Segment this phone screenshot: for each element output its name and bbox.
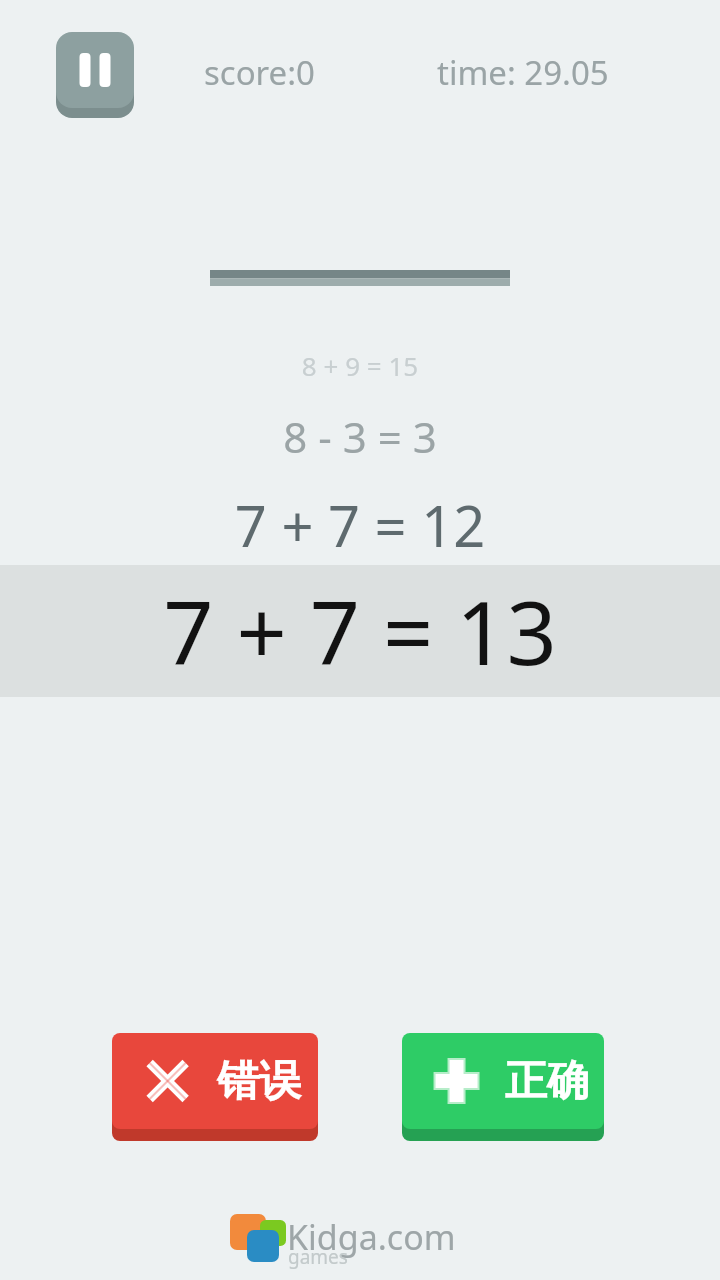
staticText: 错误 — [217, 1055, 301, 1108]
button[interactable]: 正确 — [402, 1033, 604, 1141]
button[interactable]: 7 + 7 = 13 — [0, 565, 720, 697]
button[interactable]: Pause — [56, 32, 134, 118]
staticText: 7 + 7 = 12 — [0, 487, 720, 563]
staticText: Kidga.com — [287, 1214, 456, 1260]
staticText: 正确 — [505, 1055, 589, 1108]
staticText: score:0 — [204, 50, 315, 95]
button[interactable]: 错误 — [112, 1033, 318, 1141]
staticText: time: 29.05 — [437, 50, 609, 95]
staticText: 8 + 9 = 15 — [0, 348, 720, 383]
staticText: 7 + 7 = 13 — [163, 571, 557, 691]
staticText: games — [288, 1244, 348, 1270]
staticText: 8 - 3 = 3 — [0, 408, 720, 465]
